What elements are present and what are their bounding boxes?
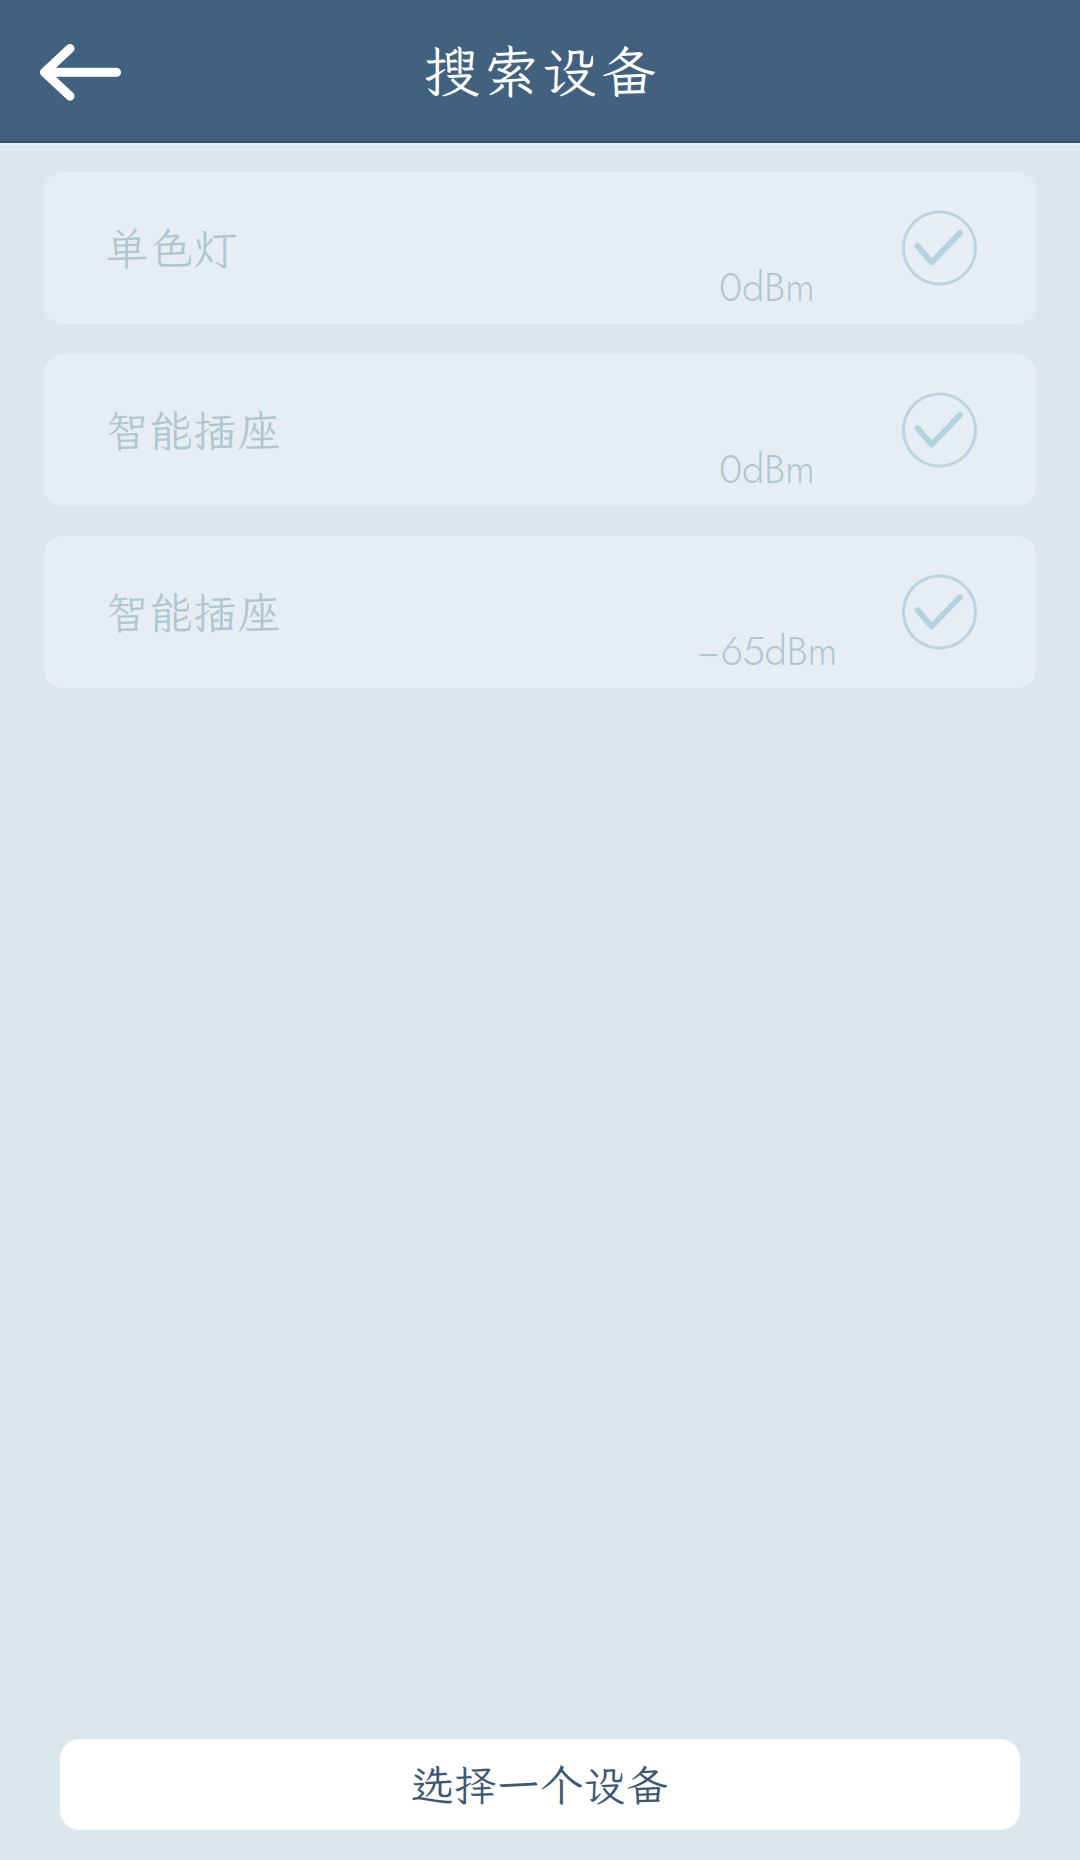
button[interactable]: 智能插座 bbox=[44, 354, 1036, 506]
button[interactable]: 返回 bbox=[0, 0, 154, 141]
button[interactable]: 智能插座 bbox=[44, 536, 1036, 688]
staticText: 智能插座 bbox=[105, 583, 281, 641]
button[interactable]: 选择一个设备 bbox=[60, 1739, 1020, 1830]
staticText: 0dBm bbox=[719, 440, 815, 498]
staticText: 单色灯 bbox=[105, 219, 237, 277]
staticText: 选择一个设备 bbox=[411, 1756, 669, 1813]
staticText: 搜索设备 bbox=[423, 34, 656, 107]
button[interactable]: 单色灯 bbox=[44, 172, 1036, 324]
staticText: 智能插座 bbox=[105, 401, 281, 459]
staticText: 0dBm bbox=[719, 258, 815, 316]
staticText: −65dBm bbox=[696, 622, 837, 680]
